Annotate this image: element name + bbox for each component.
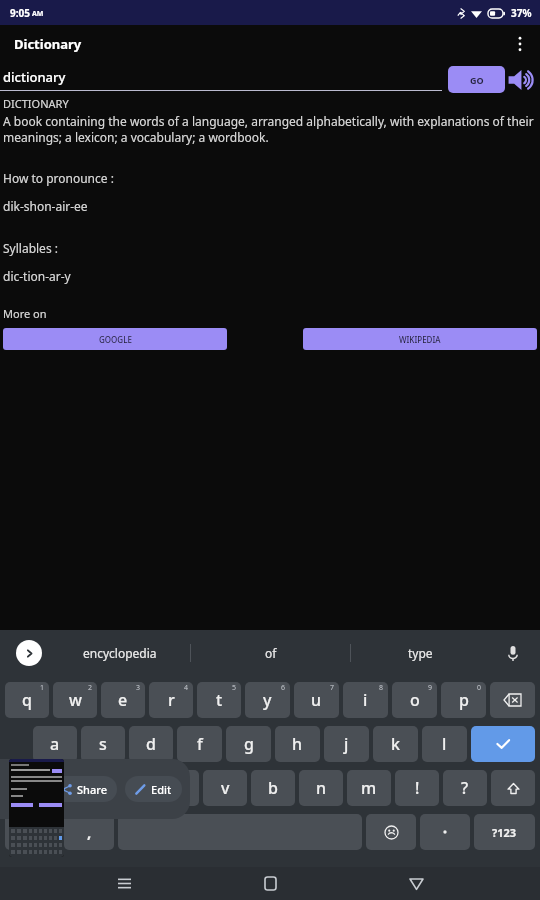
button[interactable]: Enter (471, 726, 535, 762)
button[interactable]: Language (5, 814, 60, 850)
button[interactable]: Share (51, 776, 117, 802)
staticText: i (363, 689, 368, 711)
staticText: e (118, 689, 128, 711)
button[interactable]: r (149, 682, 193, 718)
button[interactable]: encyclopedia (50, 630, 190, 675)
button[interactable]: l (422, 726, 467, 762)
button[interactable]: Comma (64, 814, 114, 850)
staticText: k (391, 733, 400, 755)
button[interactable]: m (347, 770, 391, 806)
staticText: q (22, 689, 32, 711)
staticText: 5 (232, 683, 237, 693)
staticText: y (263, 689, 272, 711)
staticText: 2 (88, 683, 93, 693)
staticText: ? (461, 777, 469, 799)
staticText: z (77, 777, 85, 799)
staticText: 37% (511, 6, 532, 20)
staticText: of (265, 645, 277, 661)
staticText: dic-tion-ar-y (3, 268, 71, 284)
staticText: m (361, 777, 377, 799)
button[interactable]: Back (394, 867, 438, 900)
staticText: p (459, 689, 469, 711)
button[interactable]: Voice input (498, 638, 528, 668)
button[interactable]: o (392, 682, 437, 718)
button[interactable]: Shift (491, 770, 535, 806)
staticText: 4 (184, 683, 189, 693)
button[interactable]: e (101, 682, 145, 718)
button[interactable]: c (155, 770, 199, 806)
button[interactable]: of (191, 630, 350, 675)
button[interactable]: Recent apps (102, 867, 146, 900)
staticText: c (173, 777, 181, 799)
staticText: j (344, 733, 349, 755)
button[interactable]: b (251, 770, 295, 806)
staticText: v (221, 777, 230, 799)
button[interactable]: GO (448, 66, 505, 93)
staticText: h (292, 733, 303, 755)
staticText: 0 (477, 683, 482, 693)
staticText: 1 (40, 683, 45, 693)
button[interactable]: Pronounce (506, 64, 538, 96)
button[interactable]: Home (248, 867, 292, 900)
button[interactable]: GOOGLE (3, 328, 227, 350)
staticText: Share (77, 782, 107, 797)
button[interactable]: a (33, 726, 77, 762)
button[interactable]: n (299, 770, 343, 806)
button[interactable]: Emoji (366, 814, 416, 850)
button[interactable]: type (351, 630, 490, 675)
button[interactable]: ? (443, 770, 487, 806)
staticText: 9:05 (10, 6, 30, 20)
staticText: GOOGLE (99, 334, 132, 345)
staticText: n (316, 777, 327, 799)
button[interactable]: p (441, 682, 486, 718)
button[interactable]: h (275, 726, 320, 762)
staticText: More on (3, 306, 47, 321)
button[interactable]: Period (420, 814, 470, 850)
staticText: type (408, 645, 433, 661)
button[interactable]: y (245, 682, 290, 718)
button[interactable]: ! (395, 770, 439, 806)
button[interactable]: More options (500, 25, 540, 63)
button[interactable]: i (343, 682, 388, 718)
staticText: AM (32, 9, 44, 19)
staticText: f (197, 733, 203, 755)
button[interactable]: s (81, 726, 125, 762)
staticText: dik-shon-air-ee (3, 198, 88, 214)
button[interactable]: d (129, 726, 173, 762)
staticText: t (216, 689, 223, 711)
staticText: a (50, 733, 60, 755)
staticText: b (268, 777, 278, 799)
button[interactable]: q (5, 682, 49, 718)
button[interactable]: u (294, 682, 339, 718)
button[interactable]: WIKIPEDIA (303, 328, 537, 350)
staticText: 8 (379, 683, 384, 693)
button[interactable]: v (203, 770, 247, 806)
staticText: l (442, 733, 447, 755)
button[interactable]: f (177, 726, 222, 762)
button[interactable]: Screenshot preview (9, 759, 64, 857)
staticText: A book containing the words of a languag… (3, 113, 537, 145)
staticText: d (146, 733, 156, 755)
staticText: GO (470, 74, 484, 86)
button[interactable]: Edit (125, 776, 182, 802)
staticText: w (69, 689, 82, 711)
staticText: , (87, 822, 92, 842)
staticText: ?123 (492, 825, 517, 840)
staticText: g (244, 733, 254, 755)
button[interactable]: k (373, 726, 418, 762)
button[interactable]: z (59, 770, 103, 806)
staticText: WIKIPEDIA (399, 334, 441, 345)
button[interactable]: More suggestions (16, 640, 42, 666)
button[interactable]: x (107, 770, 151, 806)
button[interactable]: w (53, 682, 97, 718)
staticText: Syllables : (3, 240, 58, 256)
button[interactable]: Backspace (490, 682, 535, 718)
button[interactable]: t (197, 682, 241, 718)
button[interactable]: j (324, 726, 369, 762)
staticText: How to pronounce : (3, 170, 114, 186)
staticText: 7 (330, 683, 335, 693)
staticText: 6 (281, 683, 286, 693)
button[interactable]: g (226, 726, 271, 762)
button[interactable]: ?123 (474, 814, 535, 850)
